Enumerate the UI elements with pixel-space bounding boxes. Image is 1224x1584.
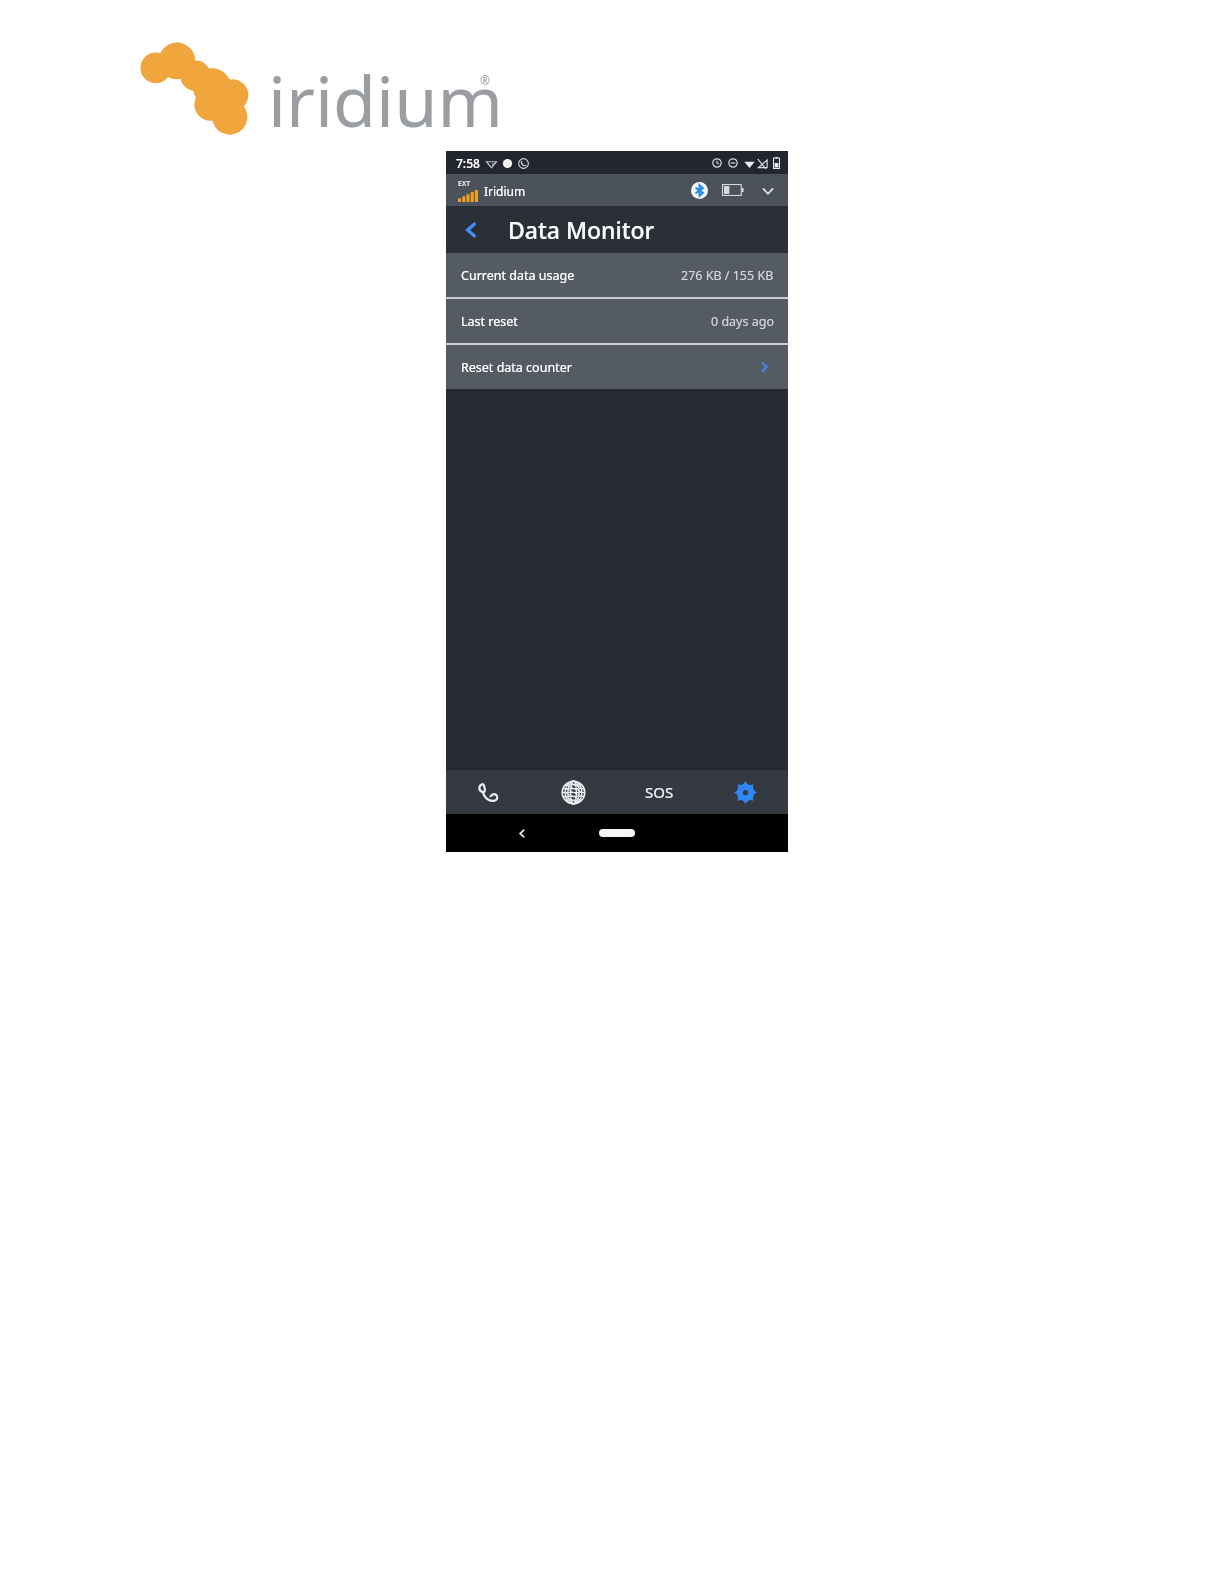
staticText: 7:58 — [456, 155, 480, 171]
staticText: ® — [480, 72, 490, 88]
button[interactable]: Data — [531, 770, 616, 814]
button[interactable]: Back — [455, 213, 489, 247]
button[interactable]: Last reset — [446, 299, 788, 343]
staticText: EXT — [458, 179, 471, 189]
button[interactable]: Current data usage — [446, 253, 788, 297]
staticText: Iridium — [484, 183, 526, 199]
staticText: Data Monitor — [508, 214, 655, 245]
button[interactable]: Home — [599, 829, 635, 837]
button[interactable]: Phone — [446, 770, 531, 814]
staticText: Last reset — [461, 313, 518, 330]
staticText: Current data usage — [461, 267, 575, 284]
button[interactable]: Back — [508, 819, 536, 847]
staticText: SOS — [645, 782, 674, 802]
button[interactable]: Settings — [702, 770, 788, 814]
staticText: Reset data counter — [461, 359, 572, 376]
staticText: iridium — [268, 52, 503, 130]
button[interactable]: SOS — [616, 770, 702, 814]
button[interactable]: Reset data counter — [446, 345, 788, 389]
staticText: 276 KB / 155 KB — [681, 267, 774, 284]
button[interactable]: Expand — [758, 180, 778, 200]
staticText: 0 days ago — [711, 313, 774, 330]
